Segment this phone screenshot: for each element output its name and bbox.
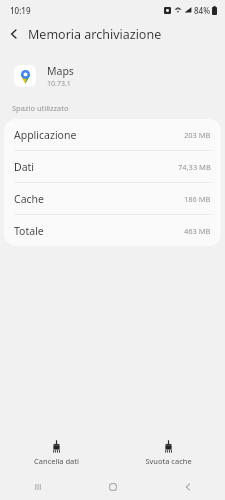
- button[interactable]: Back: [0, 20, 28, 48]
- staticText: 10:19: [10, 5, 31, 16]
- staticText: Cache: [14, 192, 44, 206]
- button[interactable]: Dati: [4, 151, 221, 182]
- staticText: Spazio utilizzato: [12, 103, 69, 113]
- button[interactable]: Svuota cache: [112, 432, 225, 474]
- button[interactable]: Totale: [4, 215, 221, 246]
- staticText: Cancella dati: [34, 456, 79, 466]
- staticText: Memoria archiviazione: [28, 26, 162, 43]
- staticText: 10.73.1: [47, 79, 71, 89]
- staticText: 463 MB: [184, 226, 211, 236]
- button[interactable]: Recents: [0, 474, 75, 500]
- button[interactable]: Maps: [0, 57, 225, 95]
- button[interactable]: Back: [150, 474, 225, 500]
- staticText: Svuota cache: [145, 456, 192, 466]
- button[interactable]: Cancella dati: [0, 432, 112, 474]
- staticText: 203 MB: [184, 130, 211, 140]
- staticText: 186 MB: [184, 194, 211, 204]
- staticText: Dati: [14, 160, 35, 174]
- staticText: Applicazione: [14, 128, 77, 142]
- staticText: 84%: [194, 5, 210, 16]
- staticText: Totale: [14, 224, 44, 238]
- staticText: 74,33 MB: [178, 162, 211, 172]
- button[interactable]: Applicazione: [4, 119, 221, 150]
- staticText: Maps: [47, 64, 74, 78]
- button[interactable]: Home: [75, 474, 150, 500]
- button[interactable]: Cache: [4, 183, 221, 214]
